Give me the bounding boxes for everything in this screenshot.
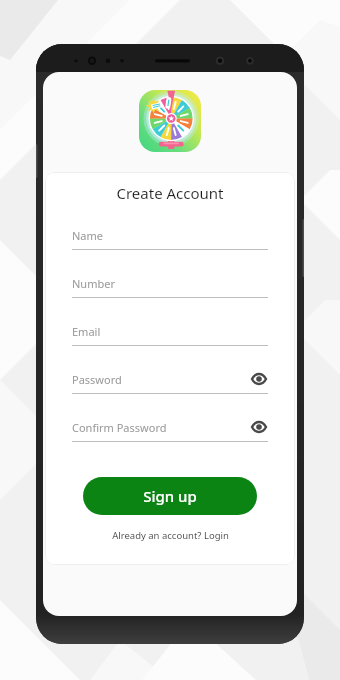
staticText: Confirm Password [72,420,250,435]
button[interactable]: Sign up [83,477,257,515]
button[interactable]: Name [72,225,268,273]
staticText: Create Account [45,183,295,203]
button[interactable]: Show password [250,418,268,436]
staticText: Sign up [143,486,197,506]
staticText: Already an account? Login [112,529,229,542]
staticText: Password [72,372,250,387]
staticText: Number [72,276,268,291]
button[interactable]: Confirm Password [72,417,268,465]
button[interactable]: Password [72,369,268,417]
staticText: Name [72,228,268,243]
button[interactable]: Show password [250,370,268,388]
staticText: Email [72,324,268,339]
button[interactable]: Email [72,321,268,369]
button[interactable]: Already an account? Login [45,529,295,542]
button[interactable]: Number [72,273,268,321]
